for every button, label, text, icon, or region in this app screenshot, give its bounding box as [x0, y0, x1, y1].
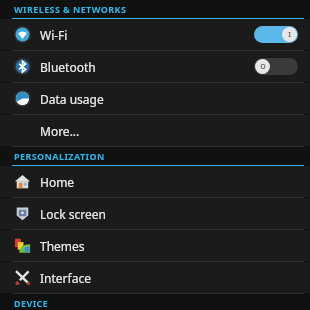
staticText: WIRELESS & NETWORKS: [14, 3, 127, 15]
button[interactable]: Toggle on: [254, 26, 298, 43]
staticText: Data usage: [40, 91, 104, 107]
staticText: Interface: [40, 270, 91, 286]
button[interactable]: Toggle off: [254, 58, 298, 75]
staticText: Lock screen: [40, 206, 107, 222]
staticText: I: [288, 30, 291, 40]
button[interactable]: Home: [0, 166, 310, 197]
button[interactable]: Data usage: [0, 83, 310, 114]
button[interactable]: Interface: [0, 262, 310, 293]
button[interactable]: Lock screen: [0, 198, 310, 229]
button[interactable]: More...: [0, 115, 310, 146]
staticText: Bluetooth: [40, 59, 96, 75]
staticText: More...: [40, 123, 80, 139]
staticText: Home: [40, 174, 75, 190]
button[interactable]: Themes: [0, 230, 310, 261]
button[interactable]: Wi-Fi: [0, 19, 310, 50]
staticText: O: [260, 62, 266, 72]
staticText: DEVICE: [14, 297, 49, 309]
staticText: Themes: [40, 238, 85, 254]
staticText: PERSONALIZATION: [14, 150, 105, 162]
staticText: Wi-Fi: [40, 27, 68, 43]
button[interactable]: Bluetooth: [0, 51, 310, 82]
